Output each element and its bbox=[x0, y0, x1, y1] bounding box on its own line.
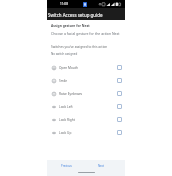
staticText: Switches you've assigned to this action bbox=[51, 45, 108, 49]
staticText: Assign gesture for Next bbox=[51, 23, 90, 27]
staticText: Look Left bbox=[59, 105, 73, 109]
staticText: Choose a facial gesture for the action N… bbox=[51, 31, 120, 36]
button[interactable]: Next bbox=[96, 161, 106, 171]
staticText: Look Up bbox=[59, 131, 72, 135]
button[interactable]: Look Right bbox=[47, 113, 125, 126]
staticText: Previous bbox=[61, 164, 72, 168]
button[interactable]: Look Up bbox=[47, 126, 125, 139]
button[interactable]: Smile bbox=[47, 74, 125, 87]
staticText: Open Mouth bbox=[59, 66, 78, 70]
button[interactable]: Look Left bbox=[47, 100, 125, 113]
staticText: Smile bbox=[59, 79, 68, 83]
staticText: 11:08 bbox=[60, 2, 68, 6]
button[interactable]: Raise Eyebrows bbox=[47, 87, 125, 100]
button[interactable]: Previous bbox=[59, 161, 74, 171]
staticText: Raise Eyebrows bbox=[59, 92, 83, 96]
staticText: Look Right bbox=[59, 118, 75, 122]
button[interactable]: Open Mouth bbox=[47, 61, 125, 74]
staticText: Switch Access setup guide bbox=[48, 12, 103, 18]
staticText: No switch assigned bbox=[51, 52, 78, 56]
staticText: Next bbox=[98, 164, 104, 168]
